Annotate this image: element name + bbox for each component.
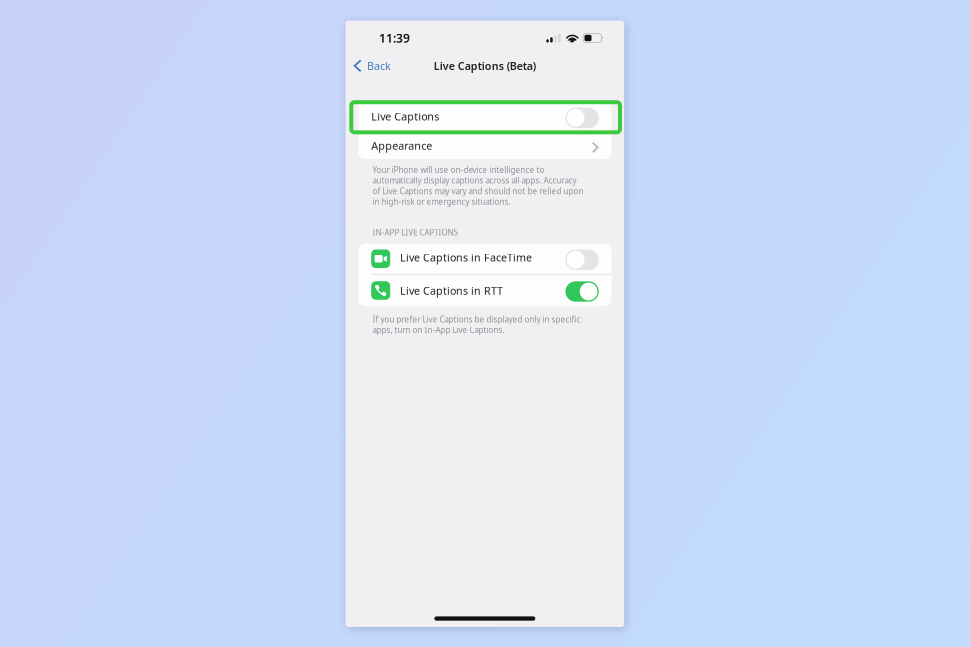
- staticText: Your iPhone will use on-device intellige…: [372, 164, 583, 207]
- staticText: Live Captions in FaceTime: [400, 250, 532, 265]
- button[interactable]: Live Captions in FaceTime: [358, 244, 611, 274]
- button[interactable]: Live Captions in RTT: [358, 275, 611, 306]
- staticText: Live Captions in RTT: [400, 283, 503, 298]
- button[interactable]: Live Captions: [358, 101, 611, 131]
- button[interactable]: Appearance: [358, 132, 611, 159]
- staticText: Live Captions (Beta): [434, 59, 536, 73]
- staticText: 11:39: [379, 30, 410, 46]
- staticText: IN-APP LIVE CAPTIONS: [372, 227, 457, 238]
- staticText: Live Captions: [371, 109, 439, 124]
- button[interactable]: Back: [345, 53, 401, 79]
- staticText: If you prefer Live Captions be displayed…: [372, 314, 580, 335]
- staticText: Back: [367, 59, 391, 73]
- staticText: Appearance: [371, 139, 432, 153]
